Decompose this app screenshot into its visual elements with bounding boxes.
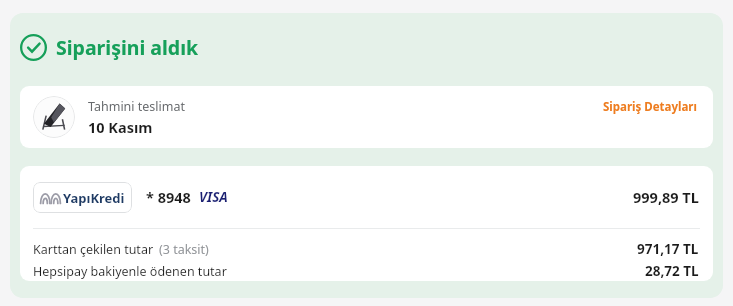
staticText: 28,72 TL xyxy=(645,262,699,280)
staticText: Tahmini teslimat xyxy=(88,98,186,115)
staticText: Karttan çekilen tutar xyxy=(33,241,154,258)
staticText: VISA xyxy=(199,188,228,206)
staticText: * 8948 xyxy=(146,187,191,207)
staticText: (3 taksit) xyxy=(159,241,209,258)
staticText: Siparişini aldık xyxy=(56,34,199,61)
staticText: 971,17 TL xyxy=(637,240,699,258)
staticText: 999,89 TL xyxy=(633,187,699,207)
other: Yapı Kredi xyxy=(40,192,61,204)
staticText: Sipariş Detayları xyxy=(603,99,697,115)
staticText: 10 Kasım xyxy=(88,117,153,137)
other: Order confirmed xyxy=(20,34,47,61)
button[interactable]: Sipariş Detayları xyxy=(601,96,699,118)
staticText: Hepsipay bakiyenle ödenen tutar xyxy=(33,263,227,280)
staticText: YapıKredi xyxy=(63,189,125,207)
